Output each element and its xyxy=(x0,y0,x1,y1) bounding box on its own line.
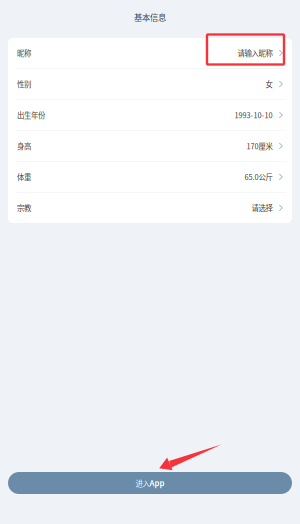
staticText: 女 xyxy=(266,79,273,89)
staticText: 请输入昵称 xyxy=(238,48,273,58)
staticText: 进入App xyxy=(135,477,164,488)
staticText: 昵称 xyxy=(17,48,31,58)
button[interactable]: 进入App xyxy=(8,472,292,494)
staticText: 1993-10-10 xyxy=(235,110,273,120)
button[interactable]: 出生年份 xyxy=(8,100,292,130)
staticText: 身高 xyxy=(17,141,31,151)
staticText: 170厘米 xyxy=(247,141,273,151)
button[interactable]: 昵称 xyxy=(8,38,292,68)
staticText: 请选择 xyxy=(252,202,273,213)
button[interactable]: 体重 xyxy=(8,162,292,192)
staticText: 宗教 xyxy=(17,202,31,213)
staticText: 性别 xyxy=(17,79,31,89)
button[interactable]: 宗教 xyxy=(8,193,292,223)
staticText: 出生年份 xyxy=(17,110,45,120)
staticText: 65.0公斤 xyxy=(245,171,273,182)
staticText: 基本信息 xyxy=(134,11,166,23)
button[interactable]: 性别 xyxy=(8,69,292,99)
button[interactable]: 身高 xyxy=(8,131,292,161)
staticText: 体重 xyxy=(17,171,31,182)
